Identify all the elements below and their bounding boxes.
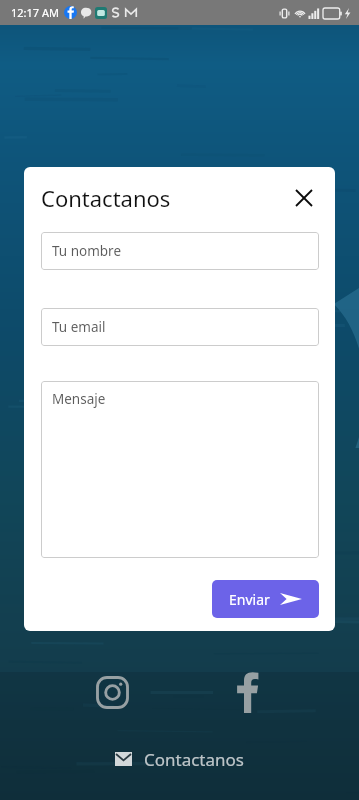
staticText: Mensaje [52,390,106,408]
button[interactable]: Contactanos [115,742,244,776]
button[interactable]: Mensaje [41,381,319,558]
button[interactable]: Instagram [95,675,130,710]
staticText: Contactanos [41,183,171,213]
button[interactable]: Enviar [212,580,319,618]
staticText: Enviar [229,590,270,609]
staticText: Contactanos [144,748,244,771]
button[interactable]: Cerrar [289,183,319,213]
button[interactable]: Facebook [232,672,262,713]
staticText: Tu email [52,318,106,336]
button[interactable]: Tu email [41,308,319,346]
button[interactable]: Tu nombre [41,232,319,270]
staticText: 12:17 AM [11,5,59,20]
staticText: Tu nombre [52,242,122,260]
